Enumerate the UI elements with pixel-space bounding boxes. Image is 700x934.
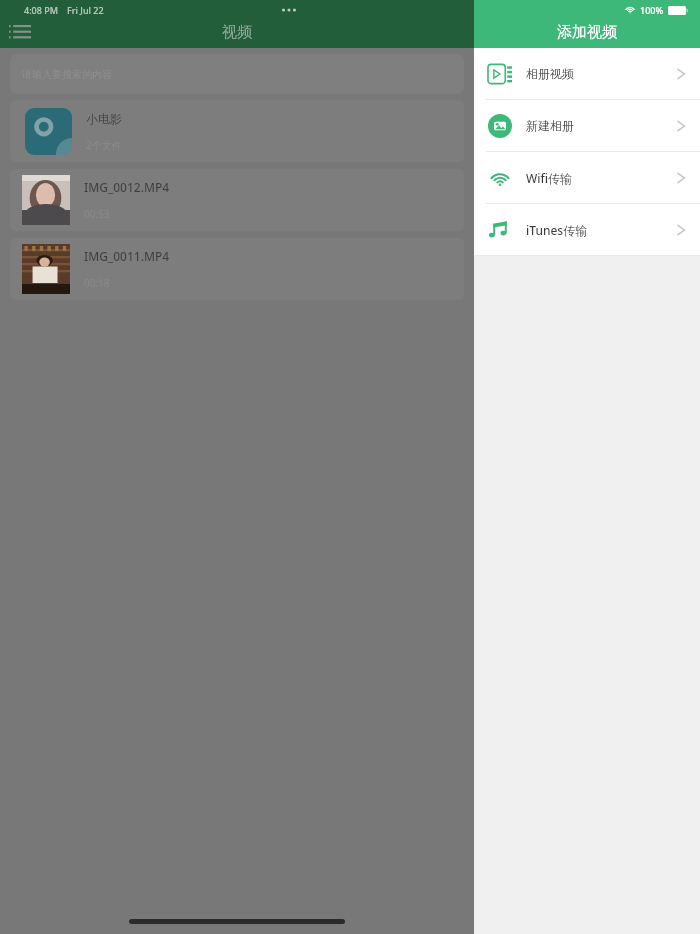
staticText: 00:53 [84, 207, 110, 221]
staticText: IMG_0012.MP4 [84, 179, 170, 195]
button[interactable]: 新建相册 [474, 100, 700, 151]
button[interactable]: Wifi传输 [474, 152, 700, 203]
button[interactable]: 小电影 [10, 100, 464, 162]
staticText: 小电影 [86, 111, 122, 126]
staticText: 100% [640, 4, 664, 16]
button[interactable]: 相册视频 [474, 48, 700, 99]
staticText: Wifi传输 [526, 170, 573, 186]
staticText: 视频 [222, 23, 252, 42]
staticText: 请输入要搜索的内容 [22, 68, 112, 81]
staticText: 4:08 PM [24, 4, 58, 16]
staticText: 00:18 [84, 276, 110, 290]
staticText: 相册视频 [526, 66, 574, 81]
staticText: 2个文件 [86, 138, 122, 152]
staticText: Fri Jul 22 [67, 4, 104, 16]
button[interactable]: Menu [0, 12, 40, 52]
button[interactable]: IMG_0012.MP4 [10, 169, 464, 231]
staticText: IMG_0011.MP4 [84, 248, 170, 264]
button[interactable]: IMG_0011.MP4 [10, 238, 464, 300]
staticText: 新建相册 [526, 118, 574, 133]
staticText: 添加视频 [557, 23, 617, 42]
staticText: iTunes传输 [526, 222, 588, 238]
button[interactable]: iTunes传输 [474, 204, 700, 255]
